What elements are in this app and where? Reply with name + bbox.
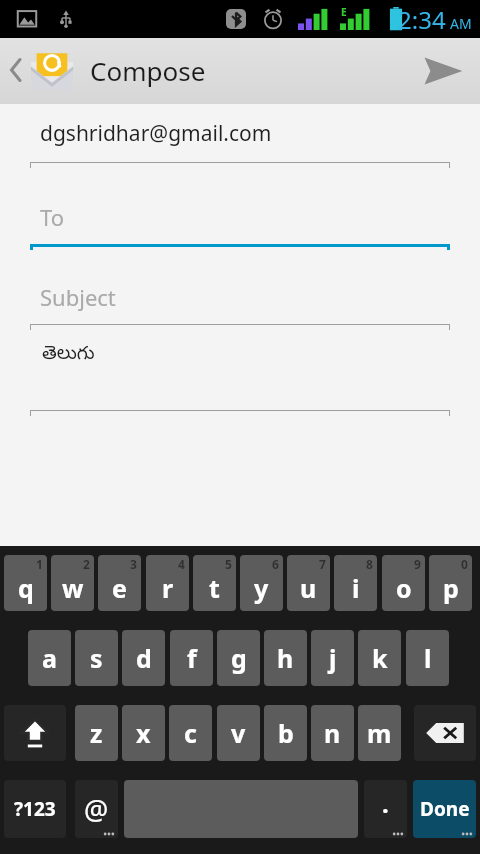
staticText: o (396, 571, 412, 605)
button[interactable]: Done (413, 780, 476, 838)
staticText: d (136, 641, 152, 675)
button[interactable]: u (287, 555, 330, 611)
staticText: k (372, 641, 388, 675)
staticText: E (341, 5, 347, 19)
button[interactable]: At sign (75, 780, 118, 838)
staticText: n (324, 716, 341, 750)
staticText: To (40, 202, 65, 232)
staticText: @ (84, 791, 109, 828)
button[interactable]: m (358, 705, 401, 761)
button[interactable]: a (28, 630, 71, 686)
button[interactable]: l (406, 630, 449, 686)
button[interactable]: v (217, 705, 260, 761)
button[interactable]: Navigate up (0, 38, 82, 102)
staticText: q (18, 571, 34, 605)
staticText: m (367, 716, 392, 750)
staticText: Compose (90, 53, 206, 88)
staticText: Done (420, 796, 470, 822)
staticText: g (231, 641, 247, 675)
staticText: x (136, 716, 151, 750)
staticText: v (231, 716, 246, 750)
staticText: p (443, 571, 459, 605)
button[interactable]: p (429, 555, 472, 611)
button[interactable]: Backspace (414, 705, 476, 761)
button[interactable]: e (98, 555, 141, 611)
staticText: 9 (414, 556, 421, 572)
staticText: తెలుగు (42, 342, 95, 368)
button[interactable]: y (240, 555, 283, 611)
button[interactable]: i (334, 555, 377, 611)
staticText: z (90, 716, 103, 750)
button[interactable]: q (4, 555, 47, 611)
staticText: b (278, 716, 294, 750)
staticText: 0 (461, 556, 468, 572)
staticText: 2:34 (398, 3, 446, 36)
staticText: AM (450, 14, 472, 33)
staticText: . (382, 787, 389, 820)
button[interactable]: Period (364, 780, 407, 838)
staticText: s (90, 641, 103, 675)
button[interactable]: To (0, 190, 480, 244)
staticText: Subject (40, 282, 116, 312)
button[interactable]: x (122, 705, 165, 761)
staticText: i (352, 571, 360, 605)
button[interactable]: Symbols (4, 780, 66, 838)
staticText: u (300, 571, 317, 605)
button[interactable]: n (311, 705, 354, 761)
staticText: 8 (366, 556, 373, 572)
staticText: 7 (319, 556, 326, 572)
staticText: y (254, 571, 269, 605)
button[interactable]: o (382, 555, 425, 611)
staticText: h (277, 641, 294, 675)
button[interactable]: Send (406, 42, 480, 100)
button[interactable]: Subject (0, 270, 480, 324)
staticText: 3 (130, 556, 137, 572)
staticText: e (112, 571, 127, 605)
staticText: f (187, 641, 197, 675)
staticText: 1 (36, 556, 43, 572)
staticText: l (424, 641, 432, 675)
button[interactable]: t (193, 555, 236, 611)
button[interactable]: c (169, 705, 212, 761)
staticText: 6 (272, 556, 279, 572)
button[interactable]: b (264, 705, 307, 761)
staticText: t (209, 571, 220, 605)
staticText: ?123 (14, 796, 56, 822)
staticText: dgshridhar@gmail.com (40, 119, 272, 148)
button[interactable]: Shift (4, 705, 66, 761)
button[interactable]: dgshridhar@gmail.com (0, 104, 480, 162)
button[interactable]: g (217, 630, 260, 686)
staticText: j (329, 641, 337, 675)
staticText: r (162, 571, 174, 605)
button[interactable]: r (146, 555, 189, 611)
button[interactable]: k (358, 630, 401, 686)
button[interactable]: w (51, 555, 94, 611)
staticText: 4 (178, 556, 185, 572)
button[interactable]: h (264, 630, 307, 686)
staticText: 5 (225, 556, 232, 572)
button[interactable]: s (75, 630, 118, 686)
staticText: 2 (83, 556, 90, 572)
staticText: a (42, 641, 57, 675)
staticText: c (184, 716, 197, 750)
staticText: w (62, 571, 84, 605)
button[interactable]: z (75, 705, 118, 761)
button[interactable]: j (311, 630, 354, 686)
button[interactable]: d (122, 630, 165, 686)
button[interactable]: తెలుగు (0, 330, 480, 410)
button[interactable]: f (170, 630, 213, 686)
